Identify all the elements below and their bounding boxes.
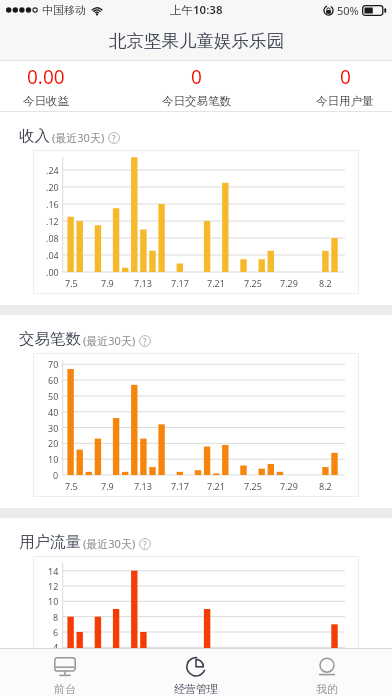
staticText: .08 <box>46 232 59 244</box>
staticText: 10 <box>48 453 59 465</box>
staticText: 交易笔数 <box>19 329 81 349</box>
staticText: 我的 <box>316 682 338 696</box>
staticText: 8.2 <box>319 277 332 289</box>
staticText: 4 <box>53 641 59 653</box>
staticText: 经营管理 <box>174 682 218 696</box>
button[interactable]: 我的 <box>261 649 392 696</box>
staticText: 10 <box>48 595 59 607</box>
staticText: 8.2 <box>319 480 332 492</box>
staticText: .00 <box>46 266 59 278</box>
staticText: 7.13 <box>134 480 152 492</box>
staticText: 7.5 <box>65 277 78 289</box>
button[interactable]: 经营管理 <box>130 649 261 696</box>
staticText: 上午10:38 <box>170 2 223 18</box>
staticText: 7.5 <box>65 683 78 695</box>
button[interactable]: 0.00 <box>0 61 111 111</box>
staticText: .16 <box>46 198 59 210</box>
staticText: 0 <box>53 469 59 481</box>
staticText: .24 <box>46 164 59 176</box>
staticText: 前台 <box>54 682 76 696</box>
staticText: 7.25 <box>244 480 262 492</box>
staticText: 7.9 <box>101 277 114 289</box>
button[interactable]: 说明 <box>108 132 120 144</box>
staticText: 50 <box>48 390 59 402</box>
staticText: 20 <box>48 437 59 449</box>
staticText: 7.29 <box>280 277 298 289</box>
staticText: .12 <box>46 215 59 227</box>
button[interactable]: 说明 <box>139 335 151 347</box>
staticText: 今日收益 <box>23 94 69 108</box>
staticText: .20 <box>46 181 59 193</box>
staticText: 7.9 <box>101 480 114 492</box>
staticText: 0.00 <box>27 64 65 90</box>
staticText: ? <box>143 539 147 550</box>
staticText: 30 <box>48 422 59 434</box>
staticText: 今日交易笔数 <box>162 94 231 108</box>
staticText: 7.21 <box>207 683 225 695</box>
staticText: (最近30天) <box>52 130 105 145</box>
staticText: 50% <box>337 3 359 18</box>
staticText: 7.21 <box>207 277 225 289</box>
staticText: 7.21 <box>207 480 225 492</box>
button[interactable]: 0 <box>131 61 261 111</box>
staticText: 6 <box>53 626 59 638</box>
staticText: 70 <box>48 358 59 370</box>
staticText: ? <box>112 133 116 144</box>
staticText: 60 <box>48 374 59 386</box>
staticText: 2 <box>53 657 59 669</box>
staticText: (最近30天) <box>83 333 136 348</box>
staticText: 7.17 <box>171 277 189 289</box>
staticText: 7.25 <box>244 277 262 289</box>
staticText: 7.5 <box>65 480 78 492</box>
staticText: ? <box>143 336 147 347</box>
button[interactable]: 前台 <box>0 649 130 696</box>
staticText: 7.13 <box>134 277 152 289</box>
staticText: 8 <box>53 611 59 623</box>
staticText: 12 <box>48 580 59 592</box>
staticText: 0 <box>191 64 202 90</box>
staticText: 0 <box>340 64 351 90</box>
staticText: 7.29 <box>280 480 298 492</box>
button[interactable]: 0 <box>280 61 392 111</box>
staticText: 7.17 <box>171 683 189 695</box>
staticText: 40 <box>48 406 59 418</box>
staticText: (最近30天) <box>83 536 136 551</box>
staticText: 7.17 <box>171 480 189 492</box>
staticText: 北京坚果儿童娱乐乐园 <box>109 30 284 52</box>
staticText: 收入 <box>19 126 50 146</box>
staticText: 用户流量 <box>19 532 81 552</box>
staticText: .04 <box>46 249 59 261</box>
staticText: 今日用户量 <box>316 94 374 108</box>
staticText: 14 <box>48 565 59 577</box>
staticText: 8.2 <box>319 683 332 695</box>
button[interactable]: 说明 <box>139 538 151 550</box>
staticText: 中国移动 <box>42 3 86 17</box>
